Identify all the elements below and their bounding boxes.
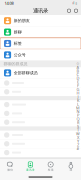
button[interactable]: 标签 <box>0 38 81 49</box>
staticText: E <box>77 79 79 85</box>
staticText: D <box>76 76 79 81</box>
button[interactable]: Add <box>74 9 78 12</box>
staticText: N <box>76 109 79 114</box>
staticText: X <box>77 135 79 140</box>
staticText: A <box>76 64 79 70</box>
staticText: C <box>76 72 79 77</box>
staticText: Q <box>76 116 79 122</box>
button[interactable] <box>0 109 81 118</box>
button[interactable]: 通讯录 <box>20 159 40 174</box>
button[interactable] <box>0 100 81 109</box>
button[interactable] <box>0 139 81 148</box>
staticText: 微信 <box>7 168 13 172</box>
button[interactable] <box>0 118 81 127</box>
staticText: T <box>77 127 79 133</box>
staticText: ☆ <box>76 61 80 66</box>
button[interactable] <box>0 79 81 87</box>
button[interactable] <box>0 131 81 139</box>
button[interactable]: 我 <box>61 159 81 174</box>
staticText: P <box>77 113 79 118</box>
staticText: W <box>76 131 80 136</box>
button[interactable] <box>0 148 81 157</box>
staticText: Z <box>77 142 79 147</box>
staticText: 新的朋友 <box>14 18 30 23</box>
staticText: ıl ▯ <box>72 1 76 5</box>
staticText: 通讯录 <box>26 168 35 172</box>
staticText: M <box>76 105 80 110</box>
staticText: 公众号 <box>14 52 26 57</box>
staticText: G <box>76 87 79 92</box>
staticText: 标签 <box>14 41 22 46</box>
staticText: K <box>77 98 79 103</box>
button[interactable]: Search <box>67 9 71 12</box>
staticText: 群聊的群成员 <box>3 61 27 66</box>
button[interactable]: 新的朋友 <box>0 15 81 26</box>
staticText: 群聊 <box>14 30 22 34</box>
staticText: 全部群聊成员 <box>14 70 38 75</box>
staticText: S <box>77 124 79 129</box>
staticText: 通讯录 <box>33 7 48 14</box>
staticText: 14:08 <box>4 1 13 6</box>
button[interactable]: 公众号 <box>0 49 81 61</box>
staticText: B <box>76 68 79 73</box>
button[interactable]: 微信 <box>0 159 20 174</box>
button[interactable]: 全部群聊成员 <box>0 67 81 79</box>
button[interactable]: 群聊 <box>0 26 81 38</box>
button[interactable]: 发现 <box>40 159 61 174</box>
staticText: Y <box>77 138 79 144</box>
staticText: 我 <box>69 168 72 172</box>
staticText: # <box>76 146 79 151</box>
staticText: L <box>77 101 79 107</box>
staticText: 发现 <box>48 168 54 172</box>
staticText: R <box>77 120 79 125</box>
button[interactable] <box>0 87 81 96</box>
staticText: F <box>77 83 79 88</box>
staticText: H <box>76 90 79 96</box>
